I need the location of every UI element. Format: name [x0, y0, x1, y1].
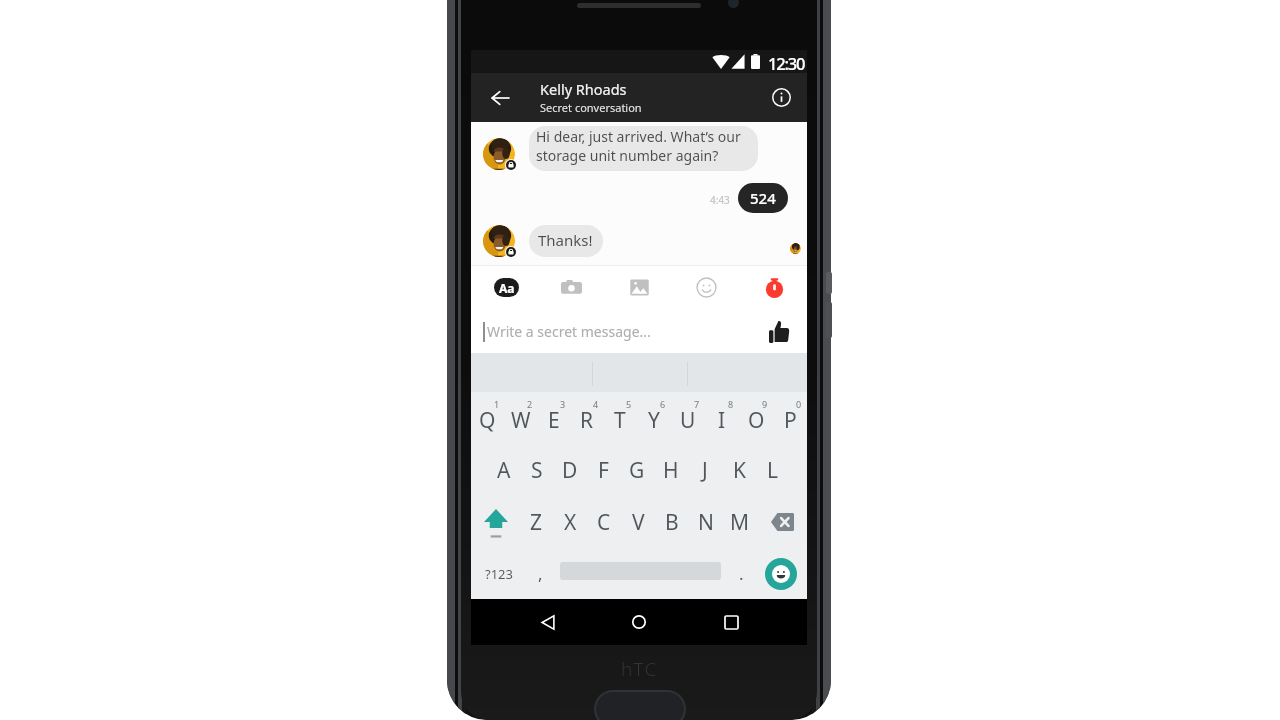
staticText: Thanks! [538, 230, 593, 250]
button[interactable]: Send a like [766, 319, 792, 345]
staticText: Write a secret message... [487, 322, 651, 341]
button[interactable]: Backspace [757, 496, 807, 548]
button[interactable]: Recent apps [708, 599, 754, 645]
staticText: ?123 [485, 565, 513, 583]
button[interactable]: 5 [603, 392, 637, 444]
staticText: K [733, 456, 746, 485]
staticText: B [665, 508, 679, 537]
staticText: Secret conversation [540, 100, 642, 115]
button[interactable]: 8 [705, 392, 739, 444]
staticText: 524 [750, 188, 776, 208]
staticText: 6 [660, 398, 666, 410]
button[interactable]: N [689, 496, 723, 548]
button[interactable]: Aa [494, 278, 519, 297]
staticText: H [663, 456, 679, 485]
staticText: 3 [560, 398, 566, 410]
staticText: Y [648, 406, 660, 435]
staticText: Kelly Rhoads [540, 79, 627, 99]
button[interactable]: F [586, 444, 620, 496]
staticText: 8 [728, 398, 734, 410]
button[interactable]: G [620, 444, 654, 496]
button[interactable]: Conversation details [756, 73, 807, 122]
staticText: M [730, 508, 750, 537]
staticText: P [784, 406, 797, 435]
staticText: 9 [762, 398, 768, 410]
button[interactable]: 1 [471, 392, 504, 444]
button[interactable]: Stickers [691, 272, 722, 303]
button[interactable]: L [756, 444, 790, 496]
staticText: A [497, 456, 511, 485]
button[interactable]: Back [525, 599, 571, 645]
staticText: R [580, 406, 594, 435]
button[interactable]: Home button [594, 690, 686, 720]
button[interactable]: Home [616, 599, 662, 645]
button[interactable]: Hi dear, just arrived. What’s our storag… [529, 126, 758, 171]
button[interactable]: Disappearing messages [759, 272, 790, 303]
button[interactable]: X [553, 496, 587, 548]
button[interactable]: C [587, 496, 621, 548]
button[interactable]: 9 [739, 392, 773, 444]
button[interactable]: ?123 [471, 548, 526, 599]
staticText: 0 [796, 398, 802, 410]
staticText: Z [530, 508, 543, 537]
button[interactable]: V [621, 496, 655, 548]
staticText: 5 [626, 398, 632, 410]
button[interactable]: Thanks! [529, 225, 603, 257]
button[interactable]: Camera [556, 272, 587, 303]
button[interactable]: Space [554, 548, 727, 599]
button[interactable]: , [526, 548, 554, 599]
staticText: G [629, 456, 645, 485]
staticText: C [597, 508, 611, 537]
staticText: W [511, 406, 531, 435]
button[interactable]: Z [520, 496, 553, 548]
staticText: Aa [499, 280, 515, 296]
staticText: 12:30 [768, 52, 805, 74]
staticText: , [538, 562, 543, 585]
staticText: U [680, 406, 696, 435]
button[interactable]: 2 [504, 392, 537, 444]
staticText: N [698, 508, 714, 537]
button[interactable]: . [727, 548, 755, 599]
button[interactable]: H [654, 444, 688, 496]
button[interactable]: S [520, 444, 553, 496]
staticText: 7 [694, 398, 700, 410]
button[interactable]: Shift [471, 496, 520, 548]
staticText: 2 [527, 398, 533, 410]
button[interactable]: Photos [624, 272, 655, 303]
staticText: Hi dear, just arrived. What’s our storag… [536, 127, 741, 165]
staticText: T [614, 406, 626, 435]
staticText: X [564, 508, 577, 537]
staticText: 4 [593, 398, 599, 410]
button[interactable]: J [688, 444, 722, 496]
button[interactable]: D [553, 444, 586, 496]
staticText: V [632, 508, 645, 537]
staticText: Q [479, 406, 496, 435]
button[interactable]: Emoji [755, 548, 807, 599]
staticText: F [598, 456, 609, 485]
staticText: O [748, 406, 765, 435]
button[interactable]: 4 [570, 392, 603, 444]
staticText: hTC [621, 656, 658, 680]
button[interactable]: 3 [537, 392, 570, 444]
button[interactable]: M [723, 496, 757, 548]
button[interactable]: Back [471, 73, 529, 122]
staticText: D [562, 456, 578, 485]
staticText: . [739, 562, 744, 585]
staticText: 1 [494, 398, 500, 410]
button[interactable]: K [722, 444, 756, 496]
button[interactable]: 6 [637, 392, 671, 444]
staticText: L [767, 456, 779, 485]
staticText: J [702, 456, 708, 485]
button[interactable]: A [487, 444, 520, 496]
staticText: 4:43 [710, 193, 730, 207]
button[interactable]: 524 [738, 183, 788, 213]
staticText: S [531, 456, 543, 485]
button[interactable]: 7 [671, 392, 705, 444]
button[interactable]: 0 [773, 392, 807, 444]
staticText: E [548, 406, 560, 435]
staticText: I [718, 406, 726, 435]
button[interactable]: B [655, 496, 689, 548]
